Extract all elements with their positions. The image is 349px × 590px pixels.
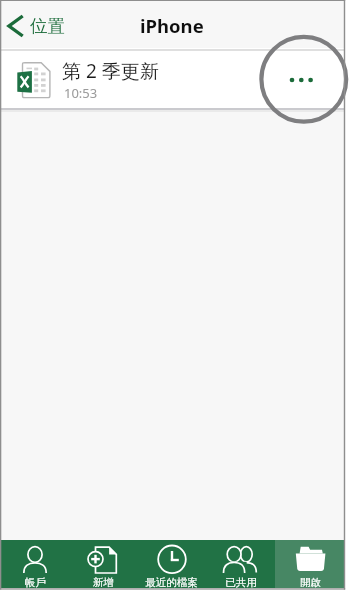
staticText: 帳戶 [25, 576, 46, 589]
button[interactable]: 新增 [69, 540, 137, 588]
button[interactable]: 最近的檔案 [137, 540, 206, 588]
button[interactable]: 開啟 [275, 540, 344, 588]
staticText: 10:53 [64, 84, 98, 102]
staticText: 已共用 [225, 576, 257, 589]
button[interactable]: 帳戶 [1, 540, 69, 588]
staticText: 位置 [30, 15, 65, 37]
button[interactable]: More options [274, 51, 330, 108]
staticText: 新增 [93, 576, 114, 589]
button[interactable]: 位置 [1, 10, 75, 42]
staticText: 開啟 [300, 576, 321, 589]
button[interactable]: 第 2 季更新 [1, 51, 344, 108]
staticText: 最近的檔案 [145, 576, 198, 589]
staticText: 第 2 季更新 [62, 58, 159, 84]
staticText: iPhone [140, 13, 204, 38]
button[interactable]: 已共用 [206, 540, 275, 588]
